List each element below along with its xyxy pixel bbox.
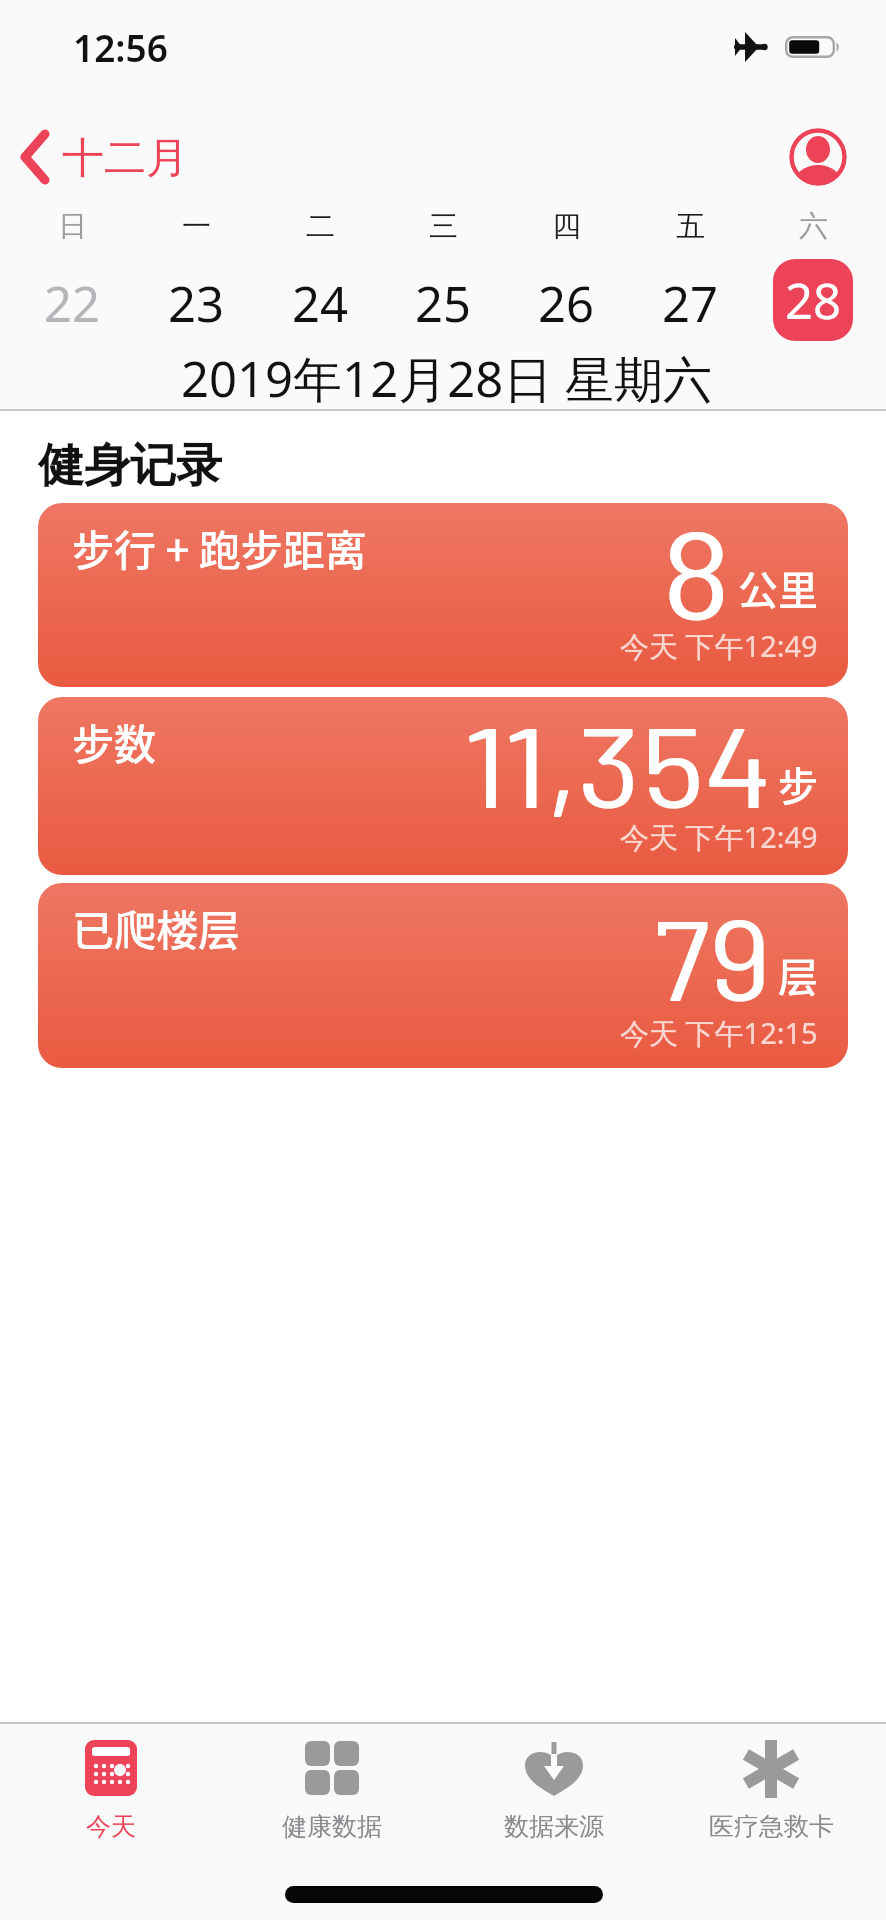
button[interactable]: 28 [773,259,853,341]
staticText: 已爬楼层 [72,897,241,958]
staticText: 医疗急救卡 [709,1811,834,1842]
staticText: 28 [785,267,842,334]
staticText: 26 [538,270,595,334]
staticText: 今天 下午12:49 [620,817,818,857]
staticText: 今天 下午12:49 [620,626,818,666]
staticText: 27 [662,270,719,334]
staticText: 层 [778,946,818,1004]
button[interactable]: 十二月 [10,126,200,190]
staticText: 二 [306,208,335,245]
staticText: 六 [799,208,828,245]
staticText: 四 [552,208,581,245]
staticText: 步行 + 跑步距离 [72,517,367,578]
button[interactable]: 26 [516,270,616,334]
button[interactable]: 已爬楼层 [38,883,848,1068]
button[interactable] [789,128,847,186]
staticText: 79 [654,888,772,1024]
button[interactable]: 今天 [11,1726,211,1850]
button[interactable]: 医疗急救卡 [671,1726,871,1850]
button[interactable]: 23 [146,270,246,334]
staticText: 今天 下午12:15 [620,1013,818,1053]
staticText: 今天 [86,1811,136,1842]
staticText: 23 [168,270,225,334]
button[interactable]: 22 [22,270,122,334]
staticText: 五 [676,208,705,245]
button[interactable]: 24 [270,270,370,334]
staticText: 日 [58,208,87,245]
staticText: 2019年12月28日 星期六 [181,345,712,405]
staticText: 数据来源 [504,1811,604,1842]
staticText: 步 [778,755,818,813]
staticText: 12:56 [73,22,168,66]
button[interactable]: 步行 + 跑步距离 [38,503,848,687]
staticText: 健身记录 [38,437,222,495]
staticText: 11,354 [465,697,772,831]
staticText: 一 [182,208,211,245]
staticText: 步数 [72,711,157,772]
button[interactable]: 27 [640,270,740,334]
button[interactable]: 数据来源 [454,1726,654,1850]
staticText: 健康数据 [282,1811,382,1842]
button[interactable]: 25 [393,270,493,334]
staticText: 22 [44,270,101,334]
staticText: 十二月 [62,132,188,185]
staticText: 24 [292,270,349,334]
staticText: 8 [661,503,732,645]
button[interactable]: 步数 [38,697,848,875]
staticText: 25 [415,270,472,334]
button[interactable]: 健康数据 [232,1726,432,1850]
staticText: 三 [429,208,458,245]
staticText: 公里 [738,559,818,617]
